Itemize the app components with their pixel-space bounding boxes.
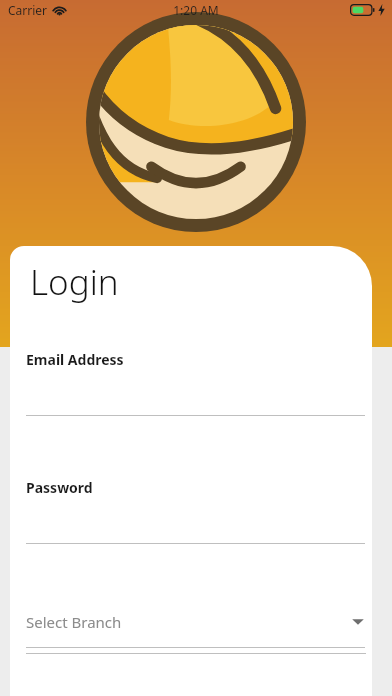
staticText: Login — [30, 258, 119, 306]
button[interactable]: Email Address — [10, 350, 372, 416]
button[interactable]: Select Branch — [10, 612, 372, 632]
button[interactable]: Password — [10, 478, 372, 544]
other: Open branch list — [350, 614, 366, 630]
staticText: Email Address — [26, 350, 124, 369]
staticText: Password — [26, 478, 93, 497]
staticText: Carrier — [8, 2, 48, 18]
staticText: Select Branch — [26, 612, 350, 632]
staticText: 1:20 AM — [173, 2, 219, 18]
